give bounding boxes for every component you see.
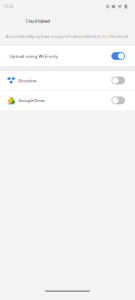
button[interactable]: Google Drive <box>0 90 135 110</box>
button[interactable]: Dropbox <box>0 71 135 90</box>
staticText: Automatically upload a copy of new scree… <box>5 33 128 39</box>
staticText: Google Drive <box>18 97 44 103</box>
button[interactable]: Upload using Wi-Fi only <box>0 46 135 66</box>
staticText: Dropbox <box>18 78 36 83</box>
staticText: Cloud Upload <box>25 18 49 24</box>
staticText: 09:34 <box>5 4 14 9</box>
staticText: Upload using Wi-Fi only <box>10 53 58 59</box>
